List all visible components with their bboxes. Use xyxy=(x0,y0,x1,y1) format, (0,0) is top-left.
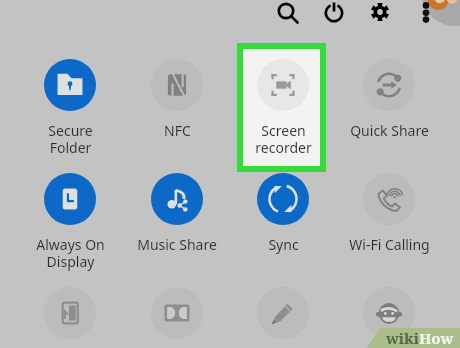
button[interactable]: Secure Folder xyxy=(44,59,96,111)
staticText: Sync xyxy=(268,235,299,254)
button[interactable]: Sync xyxy=(257,173,309,225)
staticText: wiki xyxy=(386,328,419,348)
button[interactable]: Search xyxy=(266,0,306,31)
button[interactable]: Quick Share xyxy=(363,59,415,111)
button[interactable]: Screen recorder xyxy=(257,59,309,111)
button[interactable]: Music Share xyxy=(151,173,203,225)
staticText: Always On Display xyxy=(36,235,105,271)
staticText: NFC xyxy=(164,121,191,140)
staticText: Music Share xyxy=(137,235,217,254)
button[interactable]: Edit xyxy=(257,287,309,339)
staticText: Quick Share xyxy=(350,121,429,140)
button[interactable]: Wi-Fi Calling xyxy=(363,173,415,225)
button[interactable]: Dolby Atmos xyxy=(151,287,203,339)
button[interactable]: AR Emoji xyxy=(363,287,415,339)
button[interactable]: Always On Display xyxy=(44,173,96,225)
button[interactable]: Smart View xyxy=(44,287,96,339)
button[interactable]: NFC xyxy=(151,59,203,111)
button[interactable]: Power xyxy=(314,0,354,33)
button[interactable]: Settings xyxy=(360,0,400,32)
staticText: Secure Folder xyxy=(48,121,93,157)
staticText: Screen recorder xyxy=(255,121,312,157)
staticText: Wi-Fi Calling xyxy=(349,235,430,254)
button[interactable]: More options xyxy=(412,0,440,24)
staticText: How xyxy=(419,328,454,348)
